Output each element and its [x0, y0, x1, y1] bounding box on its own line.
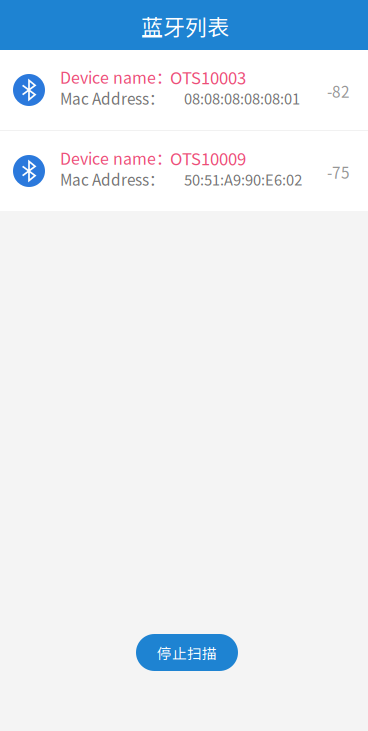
- staticText: 50:51:A9:90:E6:02: [184, 168, 302, 190]
- staticText: Mac Address：: [60, 168, 164, 190]
- button[interactable]: 停止扫描: [136, 634, 238, 671]
- staticText: -82: [327, 80, 350, 102]
- staticText: 停止扫描: [157, 642, 217, 663]
- staticText: 08:08:08:08:08:01: [184, 87, 300, 109]
- staticText: OTS10003: [170, 65, 246, 89]
- button[interactable]: Device name：: [0, 50, 368, 130]
- staticText: OTS10009: [170, 146, 246, 170]
- staticText: 蓝牙列表: [141, 10, 229, 42]
- staticText: Mac Address：: [60, 87, 164, 109]
- staticText: Device name：: [60, 65, 172, 88]
- staticText: -75: [327, 161, 350, 183]
- button[interactable]: Device name：: [0, 131, 368, 211]
- staticText: Device name：: [60, 146, 172, 169]
